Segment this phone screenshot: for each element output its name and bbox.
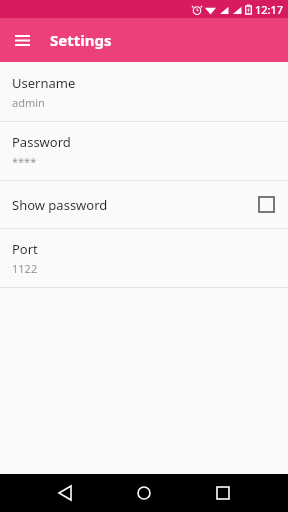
staticText: Password xyxy=(12,133,71,151)
staticText: admin xyxy=(12,95,45,110)
button[interactable]: Back xyxy=(52,480,78,506)
button[interactable]: Password xyxy=(0,122,288,180)
staticText: 1122 xyxy=(12,261,38,276)
button[interactable]: Port xyxy=(0,229,288,287)
button[interactable]: Username xyxy=(0,62,288,121)
staticText: Settings xyxy=(50,30,112,50)
staticText: Show password xyxy=(12,196,259,214)
button[interactable]: Home xyxy=(131,480,157,506)
button[interactable]: Open navigation menu xyxy=(8,26,36,54)
button[interactable]: Recent apps xyxy=(210,480,236,506)
staticText: **** xyxy=(12,154,37,169)
staticText: 12:17 xyxy=(255,2,284,17)
button[interactable]: Show password xyxy=(0,181,288,228)
staticText: Port xyxy=(12,240,38,258)
staticText: Username xyxy=(12,74,76,92)
